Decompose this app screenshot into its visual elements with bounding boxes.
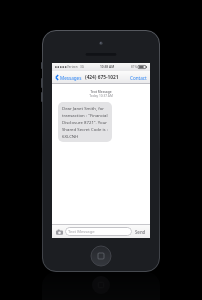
staticText: Today 10:37 AM <box>52 94 150 98</box>
button[interactable]: Send <box>134 228 147 236</box>
staticText: Dear Janet Smith, for <box>62 105 105 111</box>
staticText: Messages <box>60 75 82 81</box>
button[interactable]: Add photo <box>55 228 63 236</box>
staticText: transaction : "Financial <box>62 112 108 118</box>
staticText: Text Message <box>52 90 150 94</box>
staticText: Text Message <box>68 229 95 235</box>
staticText: 6XLCNH <box>62 133 79 139</box>
staticText: Contact <box>130 75 147 81</box>
staticText: Send <box>135 229 146 235</box>
button[interactable]: Dear Janet Smith, for <box>58 102 112 142</box>
staticText: Shared Secret Code is : <box>62 126 108 132</box>
staticText: Disclosure 8721". Your <box>62 119 108 125</box>
button[interactable]: Messages <box>54 73 83 82</box>
staticText: (424) 675-1021 <box>85 74 119 81</box>
staticText: 3G <box>80 65 84 69</box>
staticText: 10:38 AM <box>100 65 115 69</box>
staticText: 81% <box>131 65 137 69</box>
staticText: Verizon <box>67 65 78 69</box>
button[interactable]: Home <box>91 246 111 266</box>
button[interactable]: Text Message <box>65 227 132 236</box>
button[interactable]: Contact <box>129 74 148 82</box>
